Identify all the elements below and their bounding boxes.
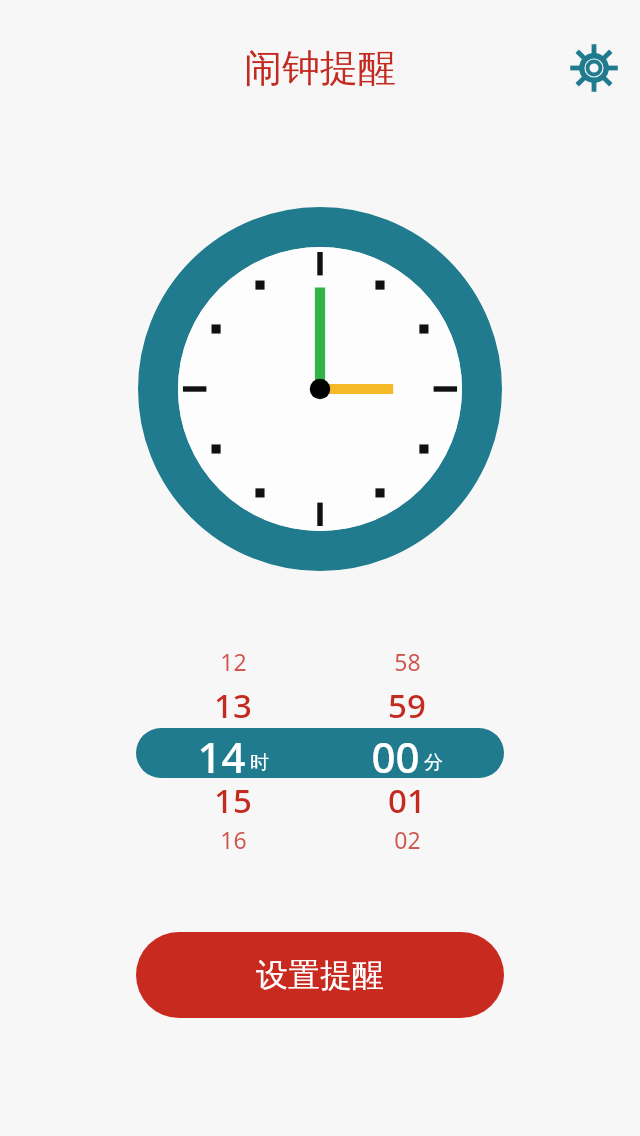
staticText: 59 (388, 683, 426, 728)
staticText: 分 (424, 751, 443, 775)
staticText: 14 (197, 728, 246, 778)
button[interactable]: 13 (158, 682, 308, 728)
button[interactable]: 02 (332, 822, 482, 856)
button[interactable]: 01 (332, 778, 482, 822)
staticText: 设置提醒 (256, 955, 384, 995)
button[interactable]: 14 (158, 728, 308, 778)
button[interactable]: 00 (371, 728, 443, 778)
staticText: 时 (250, 751, 269, 775)
staticText: 闹钟提醒 (244, 44, 396, 92)
staticText: 02 (394, 824, 421, 855)
button[interactable]: 00 (332, 728, 482, 778)
staticText: 16 (220, 824, 247, 855)
button[interactable]: 12 (158, 640, 308, 682)
staticText: 12 (220, 646, 247, 677)
staticText: 15 (214, 778, 252, 822)
button[interactable]: 15 (158, 778, 308, 822)
button[interactable]: 59 (332, 682, 482, 728)
staticText: 00 (371, 728, 420, 778)
button[interactable]: 58 (332, 640, 482, 682)
staticText: 58 (394, 646, 421, 677)
button[interactable]: Settings (566, 40, 622, 96)
button[interactable]: 设置提醒 (136, 932, 504, 1018)
staticText: 13 (214, 683, 252, 728)
button[interactable]: 16 (158, 822, 308, 856)
staticText: 01 (388, 778, 426, 822)
button[interactable]: 14 (197, 728, 269, 778)
